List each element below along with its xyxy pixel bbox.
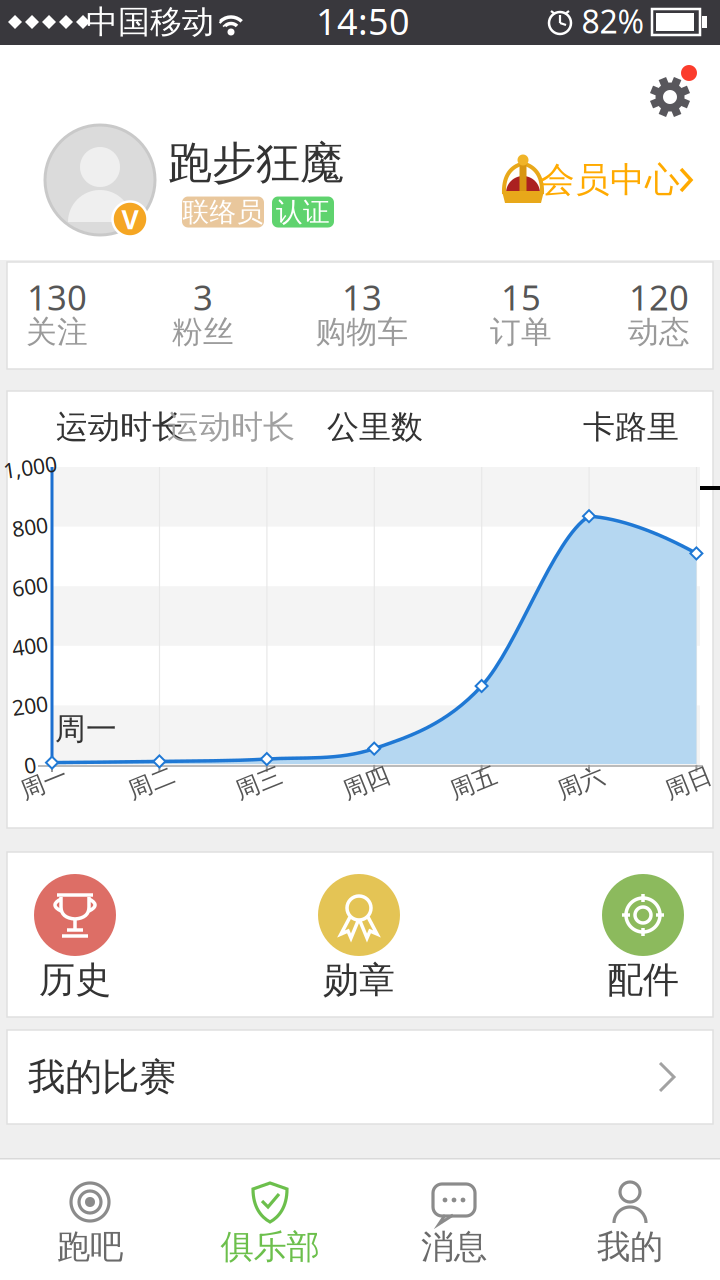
staticText: 公里数 [327,407,423,447]
staticText: 400 [12,632,48,660]
button[interactable]: 公里数 [320,407,430,447]
staticText: 消息 [421,1226,487,1267]
staticText: 82% [581,0,644,42]
button[interactable]: 我的比赛 [7,1030,713,1124]
staticText: 联络员 [182,196,263,228]
staticText: 14:50 [316,0,410,45]
staticText: 200 [12,691,48,719]
staticText: 周日 [664,768,712,798]
staticText: 800 [12,512,48,541]
staticText: 13 [342,274,382,320]
staticText: 历史 [39,958,111,1002]
staticText: 130 [27,274,87,320]
staticText: 周三 [235,768,283,798]
button[interactable]: 历史 [15,868,135,1008]
staticText: 俱乐部 [220,1226,319,1267]
staticText: 0 [24,751,36,779]
staticText: 跑步狂魔 [168,136,344,190]
staticText: 周四 [342,768,390,798]
staticText: 120 [629,274,689,320]
button[interactable]: 运动时长 [45,407,195,447]
staticText: 我的 [597,1226,663,1267]
staticText: 跑吧 [57,1226,123,1267]
staticText: 关注 [26,313,88,351]
button[interactable]: 配件 [583,868,703,1008]
button[interactable]: 会员中心 [498,148,698,212]
button[interactable]: 设置 [642,61,702,123]
staticText: 配件 [607,958,679,1002]
staticText: 订单 [490,313,552,351]
staticText: 卡路里 [583,407,679,447]
staticText: 运动时长 [167,407,295,447]
staticText: 中国移动 [86,2,214,42]
staticText: 1,000 [3,453,57,481]
staticText: 运动时长 [56,407,184,447]
staticText: 3 [193,274,213,320]
button[interactable]: 俱乐部 [180,1159,360,1279]
button[interactable]: 跑吧 [0,1159,180,1279]
staticText: V [121,201,138,237]
button[interactable]: 消息 [364,1159,544,1279]
staticText: 周二 [127,768,175,798]
button[interactable]: 卡路里 [576,407,686,447]
staticText: 周一 [20,768,68,798]
button[interactable]: 勋章 [299,868,419,1008]
staticText: 周一 [55,710,117,748]
staticText: 会员中心 [540,159,680,201]
staticText: 粉丝 [172,313,234,351]
button[interactable]: 我的 [540,1159,720,1279]
staticText: 购物车 [315,313,408,351]
button[interactable]: 运动时长 [156,407,306,447]
staticText: 周五 [450,768,498,798]
staticText: 周六 [557,768,605,798]
staticText: 我的比赛 [28,1054,176,1100]
staticText: 勋章 [323,958,395,1002]
staticText: 动态 [628,313,690,351]
staticText: 15 [501,274,541,320]
staticText: 认证 [276,196,330,228]
staticText: 600 [12,572,48,600]
